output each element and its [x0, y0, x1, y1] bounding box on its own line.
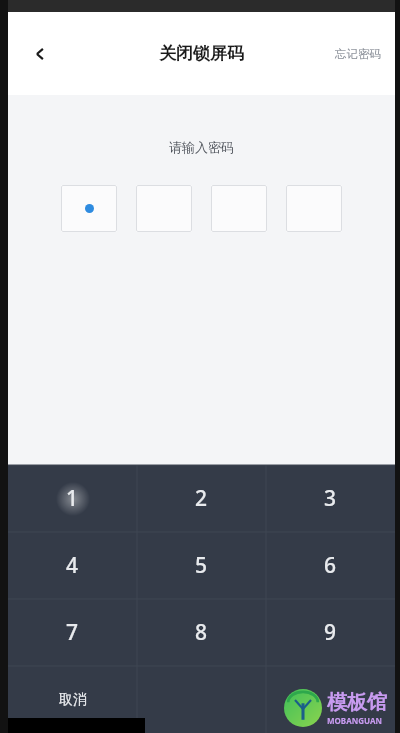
button[interactable]: Key	[266, 666, 395, 733]
staticText: 7	[66, 618, 79, 647]
staticText: 模板馆	[327, 690, 387, 715]
button[interactable]: PIN digit 2	[136, 185, 192, 232]
staticText: 请输入密码	[169, 139, 234, 155]
button[interactable]: Key	[137, 666, 266, 733]
staticText: 8	[195, 618, 208, 647]
button[interactable]: 5	[137, 532, 266, 599]
button[interactable]: PIN digit 4	[286, 185, 342, 232]
staticText: 忘记密码	[335, 47, 381, 61]
button[interactable]: 忘记密码	[329, 39, 387, 69]
staticText: MOBANGUAN	[327, 715, 383, 726]
button[interactable]: 8	[137, 599, 266, 666]
staticText: 6	[324, 551, 337, 580]
staticText: 关闭锁屏码	[159, 43, 244, 64]
staticText: 5	[195, 551, 208, 580]
staticText: 9	[324, 618, 337, 647]
button[interactable]: 4	[8, 532, 137, 599]
button[interactable]: 7	[8, 599, 137, 666]
button[interactable]: Back	[18, 32, 62, 76]
staticText: 1	[66, 484, 79, 513]
button[interactable]: 取消	[8, 666, 137, 733]
button[interactable]: PIN digit 3	[211, 185, 267, 232]
button[interactable]: 1	[8, 465, 137, 532]
staticText: 取消	[59, 691, 87, 709]
staticText: 2	[195, 484, 208, 513]
staticText: 4	[66, 551, 79, 580]
button[interactable]: PIN digit 1	[61, 185, 117, 232]
staticText: 3	[324, 484, 337, 513]
button[interactable]: 6	[266, 532, 395, 599]
button[interactable]: 3	[266, 465, 395, 532]
button[interactable]: 9	[266, 599, 395, 666]
button[interactable]: 2	[137, 465, 266, 532]
